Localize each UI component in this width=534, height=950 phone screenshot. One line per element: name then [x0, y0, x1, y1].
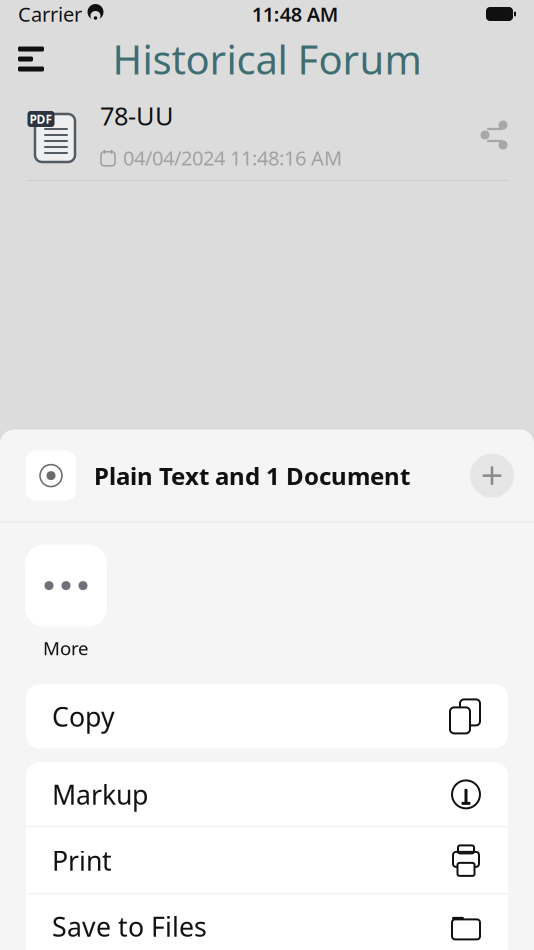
staticText: Copy: [52, 699, 115, 734]
staticText: Historical Forum: [112, 32, 421, 85]
button[interactable]: Menu: [9, 37, 53, 81]
staticText: Save to Files: [52, 909, 207, 944]
button[interactable]: PDF: [0, 90, 534, 180]
staticText: Carrier: [18, 1, 82, 27]
staticText: Plain Text and 1 Document: [94, 460, 410, 492]
staticText: Markup: [52, 777, 148, 812]
button[interactable]: Markup: [26, 762, 508, 826]
button[interactable]: Close: [466, 450, 518, 502]
button[interactable]: Save to Files: [26, 894, 508, 950]
staticText: PDF: [29, 111, 52, 127]
staticText: 11:48 AM: [252, 1, 339, 27]
staticText: Print: [52, 843, 112, 878]
button[interactable]: More: [20, 545, 112, 660]
staticText: More: [43, 636, 89, 660]
button[interactable]: Print: [26, 827, 508, 893]
button[interactable]: Copy: [26, 684, 508, 748]
staticText: 04/04/2024 11:48:16 AM: [123, 144, 342, 171]
staticText: 78-UU: [100, 99, 174, 132]
